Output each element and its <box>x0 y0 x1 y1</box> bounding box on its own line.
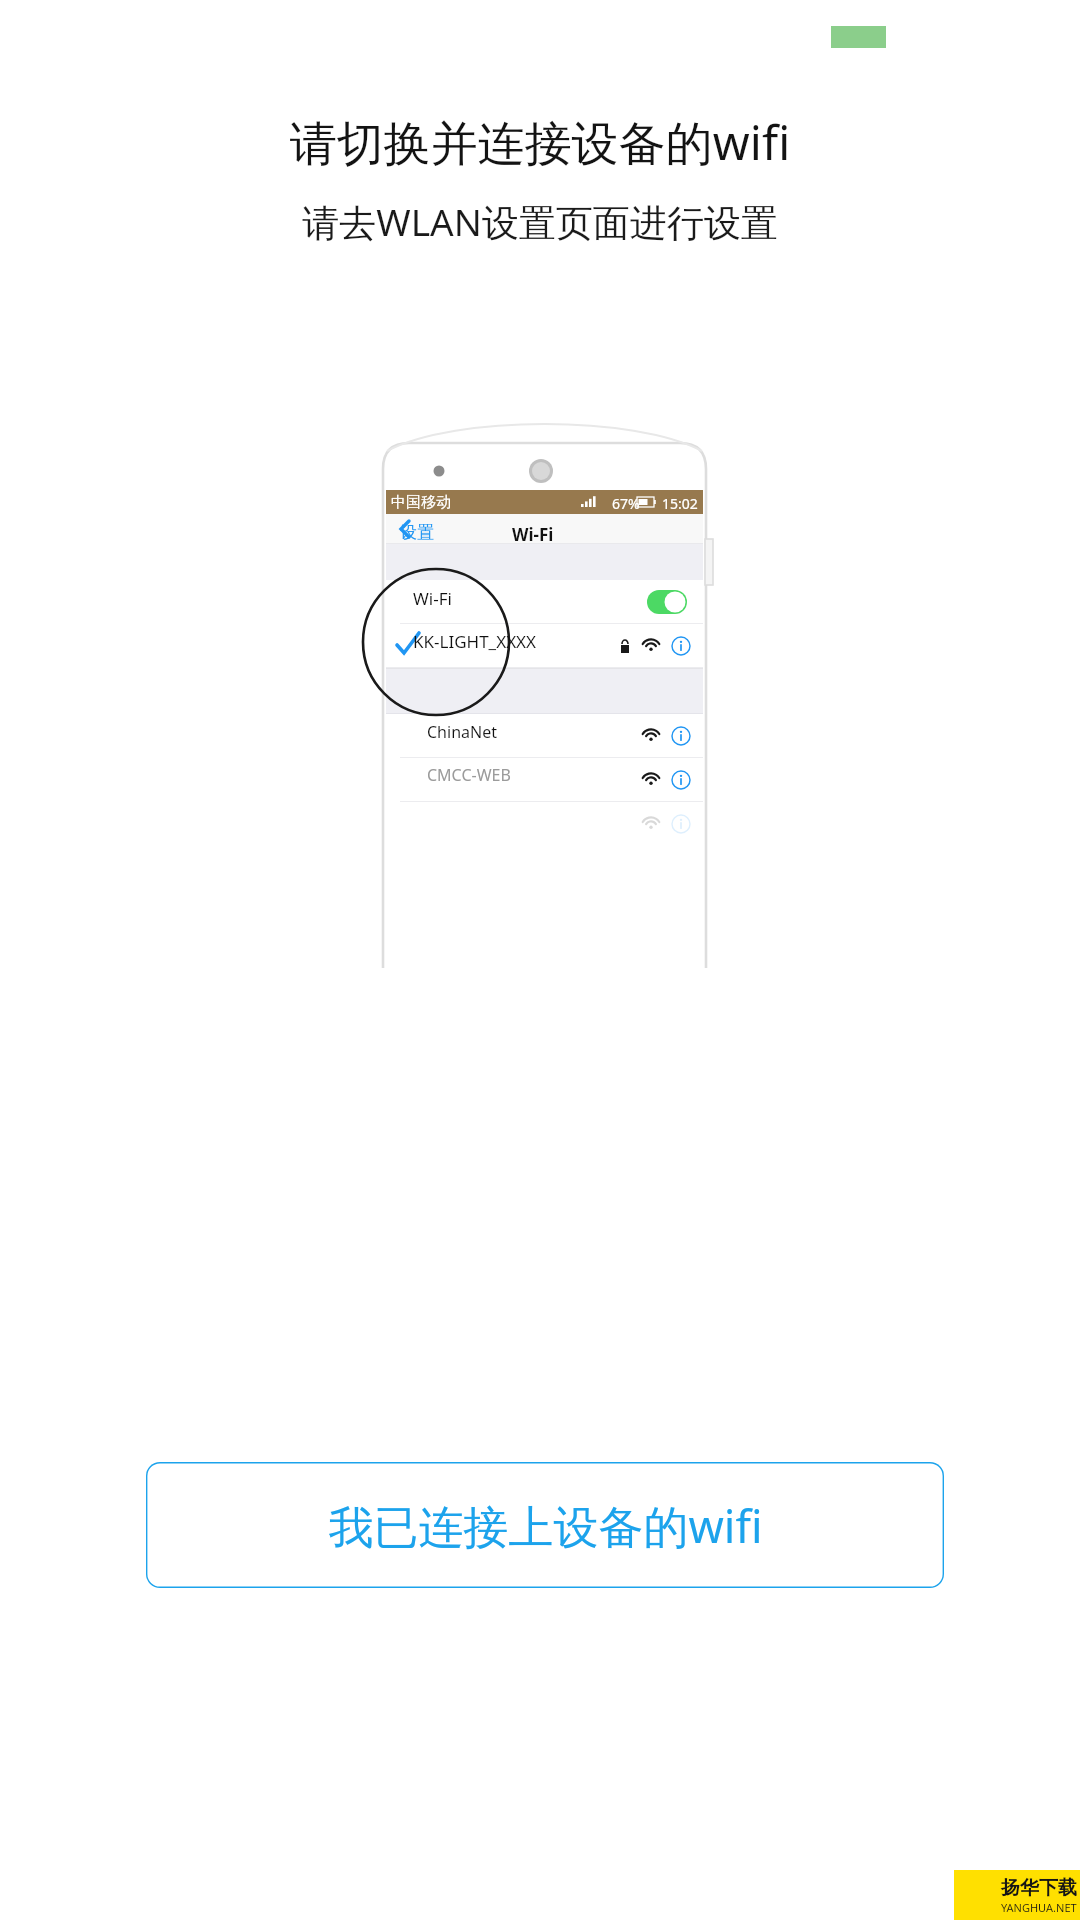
staticText: 请切换并连接设备的wifi <box>0 110 1080 174</box>
button[interactable]: 我已连接上设备的wifi <box>146 1462 944 1588</box>
staticText: 设置 <box>400 522 434 543</box>
staticText: KK-LIGHT_XXXX <box>413 630 537 653</box>
staticText: CMCC-WEB <box>427 764 511 786</box>
staticText: 15:02 <box>662 494 698 513</box>
staticText: 扬华下载 <box>1001 1876 1077 1900</box>
staticText: Wi-Fi <box>413 587 452 610</box>
staticText: 67% <box>612 494 640 513</box>
staticText: ChinaNet <box>427 721 497 743</box>
staticText: YANGHUA.NET <box>1001 1900 1077 1915</box>
staticText: 我已连接上设备的wifi <box>328 1495 763 1556</box>
staticText: 请去WLAN设置页面进行设置 <box>0 196 1080 247</box>
staticText: Wi-Fi <box>512 523 554 546</box>
staticText: 中国移动 <box>391 493 451 512</box>
